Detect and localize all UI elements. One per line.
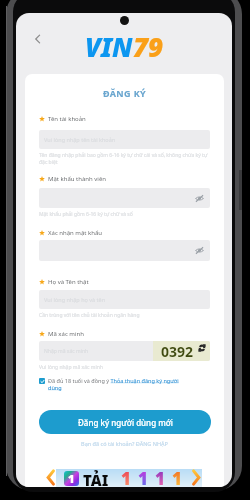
staticText: ĐĂNG KÝ bbox=[25, 87, 224, 99]
staticText: 0392 bbox=[161, 342, 194, 361]
staticText: VIN bbox=[85, 29, 133, 64]
button[interactable]: Refresh captcha bbox=[153, 341, 210, 361]
button[interactable]: Back bbox=[30, 31, 46, 47]
staticText: 1 bbox=[121, 467, 131, 487]
button[interactable]: 1 bbox=[46, 466, 202, 487]
button[interactable]: Đăng ký người dùng mới bbox=[39, 410, 211, 434]
staticText: Mật khẩu phải gồm 6-16 ký tự chữ và số bbox=[39, 211, 210, 218]
staticText: Tên đăng nhập phải bao gồm 6-16 ký tự ch… bbox=[39, 152, 210, 166]
button[interactable]: Đã đủ 18 tuổi và đồng ý Thỏa thuận đăng … bbox=[39, 377, 210, 391]
staticText: 1 bbox=[155, 467, 165, 487]
button[interactable]: Bạn đã có tài khoản? ĐĂNG NHẬP bbox=[25, 440, 224, 447]
button[interactable]: Toggle password visibility bbox=[195, 246, 204, 255]
button[interactable]: Toggle password visibility bbox=[39, 188, 210, 208]
staticText: Vui lòng nhập mã xác minh bbox=[39, 364, 103, 371]
staticText: 1 bbox=[138, 467, 148, 487]
staticText: Đã đủ 18 tuổi và đồng ý Thỏa thuận đăng … bbox=[48, 377, 186, 391]
staticText: TẢI bbox=[83, 470, 109, 487]
staticText: Xác nhận mật khẩu bbox=[48, 229, 103, 237]
staticText: Đăng ký người dùng mới bbox=[78, 417, 173, 428]
staticText: Vui lòng nhập họ và tên bbox=[44, 296, 106, 303]
staticText: 1 bbox=[68, 471, 75, 486]
button[interactable]: Toggle password visibility bbox=[195, 194, 204, 203]
staticText: Mã xác minh bbox=[48, 330, 84, 338]
staticText: 1 bbox=[172, 467, 182, 487]
button[interactable]: Toggle password visibility bbox=[39, 240, 210, 261]
staticText: Cần trùng với tên chủ tài khoản ngân hàn… bbox=[39, 312, 210, 319]
staticText: Nhập mã xác minh bbox=[44, 348, 89, 355]
staticText: Mật khẩu thành viên bbox=[48, 175, 106, 183]
staticText: Tên tài khoản bbox=[48, 115, 86, 123]
staticText: Họ và Tên thật bbox=[48, 278, 89, 286]
staticText: Vui lòng nhập tên tài khoản bbox=[44, 136, 116, 143]
staticText: 79 bbox=[133, 29, 164, 64]
